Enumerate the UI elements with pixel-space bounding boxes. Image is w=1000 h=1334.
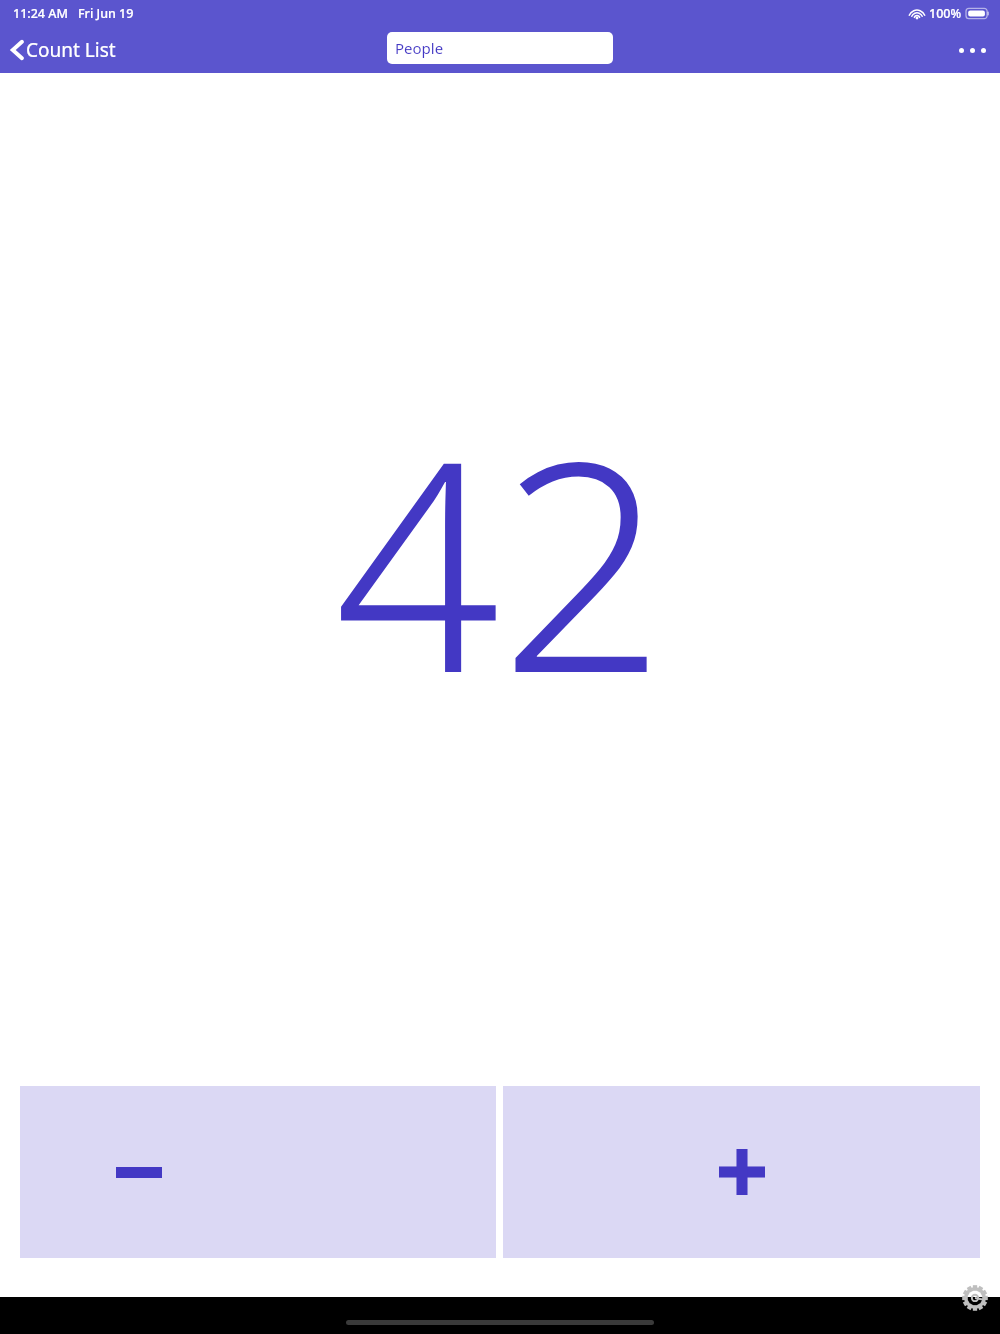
staticText: 11:24 AM <box>13 5 68 22</box>
staticText: People <box>395 38 444 58</box>
button[interactable]: People <box>387 32 613 64</box>
button[interactable]: Count List <box>0 31 126 69</box>
staticText: Count List <box>26 37 116 63</box>
button[interactable]: Decrement <box>20 1086 496 1258</box>
button[interactable]: Settings <box>959 1297 991 1329</box>
staticText: 42 <box>334 362 666 757</box>
staticText: Fri Jun 19 <box>78 5 134 22</box>
button[interactable]: Increment <box>503 1086 980 1258</box>
staticText: 100% <box>929 5 962 22</box>
button[interactable]: More options <box>945 36 1000 65</box>
